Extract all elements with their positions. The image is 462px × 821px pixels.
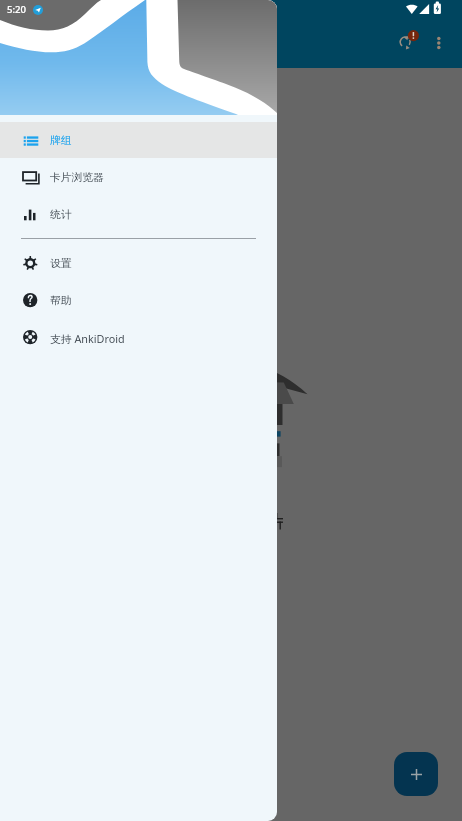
staticText: 统计: [50, 208, 72, 222]
staticText: 帮助: [50, 294, 72, 308]
staticText: 5:20: [7, 3, 27, 16]
button[interactable]: 帮助: [0, 282, 277, 318]
button[interactable]: Add deck: [394, 752, 438, 796]
button[interactable]: Sync: [392, 28, 424, 60]
staticText: 牌组: [50, 134, 72, 148]
button[interactable]: 牌组: [0, 122, 277, 158]
button[interactable]: 支持 AnkiDroid: [0, 319, 277, 355]
staticText: 设置: [50, 257, 72, 271]
staticText: 支持 AnkiDroid: [50, 331, 125, 346]
button[interactable]: More options: [424, 28, 456, 60]
staticText: 卡片浏览器: [50, 171, 104, 185]
button[interactable]: 卡片浏览器: [0, 159, 277, 195]
button[interactable]: 设置: [0, 245, 277, 281]
button[interactable]: 统计: [0, 196, 277, 232]
